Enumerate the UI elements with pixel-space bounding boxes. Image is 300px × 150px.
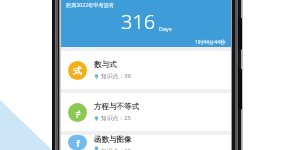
- button[interactable]: 式: [61, 51, 231, 89]
- staticText: f: [76, 137, 80, 149]
- staticText: Days: [159, 25, 172, 32]
- staticText: ≠: [75, 107, 81, 119]
- staticText: 316: [121, 8, 156, 35]
- button[interactable]: 距离2022年中考还有: [61, 0, 231, 47]
- button[interactable]: f: [61, 135, 231, 150]
- staticText: 式: [73, 65, 82, 76]
- staticText: 方程与不等式: [94, 102, 139, 111]
- staticText: 知识点：39: [101, 72, 131, 80]
- staticText: 知识点：25: [101, 114, 131, 122]
- staticText: 1时44分44秒: [195, 38, 226, 45]
- staticText: 函数与图像: [94, 135, 132, 144]
- staticText: 距离2022年中考还有: [66, 1, 115, 8]
- staticText: 数与式: [94, 60, 117, 69]
- staticText: 知识点：30: [101, 147, 131, 150]
- button[interactable]: ≠: [61, 93, 231, 131]
